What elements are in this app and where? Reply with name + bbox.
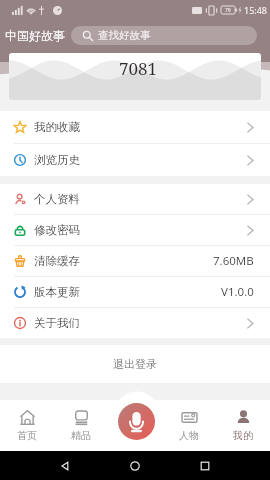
button[interactable]: 关于我们 — [0, 308, 270, 338]
button[interactable]: 我的 — [216, 400, 270, 451]
staticText: 首页 — [17, 429, 37, 442]
other: 最近任务 — [200, 461, 210, 471]
other: 主页 — [130, 461, 140, 471]
staticText: 人物 — [179, 429, 199, 442]
button[interactable]: 版本更新 — [0, 277, 270, 307]
staticText: 7081 — [119, 57, 158, 80]
staticText: 我的收藏 — [34, 120, 80, 134]
button[interactable]: 语音搜索 — [118, 403, 155, 440]
staticText: 清除缓存 — [34, 254, 80, 268]
button[interactable]: 首页 — [0, 400, 54, 451]
staticText: 退出登录 — [113, 357, 157, 371]
button[interactable]: 精品 — [54, 400, 108, 451]
staticText: 我的 — [233, 429, 253, 442]
button[interactable]: 浏览历史 — [0, 144, 270, 176]
button[interactable]: 清除缓存 — [0, 246, 270, 276]
staticText: 精品 — [71, 429, 91, 442]
button[interactable]: 个人资料 — [0, 184, 270, 214]
staticText: 个人资料 — [34, 192, 80, 206]
other: 返回 — [60, 461, 70, 471]
staticText: 15:48 — [244, 4, 268, 16]
staticText: 79 — [225, 7, 231, 14]
staticText: 中国好故事 — [5, 28, 65, 43]
button[interactable]: 我的收藏 — [0, 111, 270, 143]
staticText: 修改密码 — [34, 223, 80, 237]
button[interactable]: 查找好故事 — [71, 26, 257, 45]
staticText: 7.60MB — [213, 253, 254, 269]
staticText: 浏览历史 — [34, 153, 80, 167]
button[interactable]: 退出登录 — [0, 345, 270, 383]
button[interactable]: 人物 — [162, 400, 216, 451]
staticText: 版本更新 — [34, 285, 80, 299]
staticText: 查找好故事 — [98, 29, 151, 42]
staticText: V1.0.0 — [221, 284, 254, 300]
button[interactable]: 修改密码 — [0, 215, 270, 245]
staticText: 关于我们 — [34, 316, 80, 330]
